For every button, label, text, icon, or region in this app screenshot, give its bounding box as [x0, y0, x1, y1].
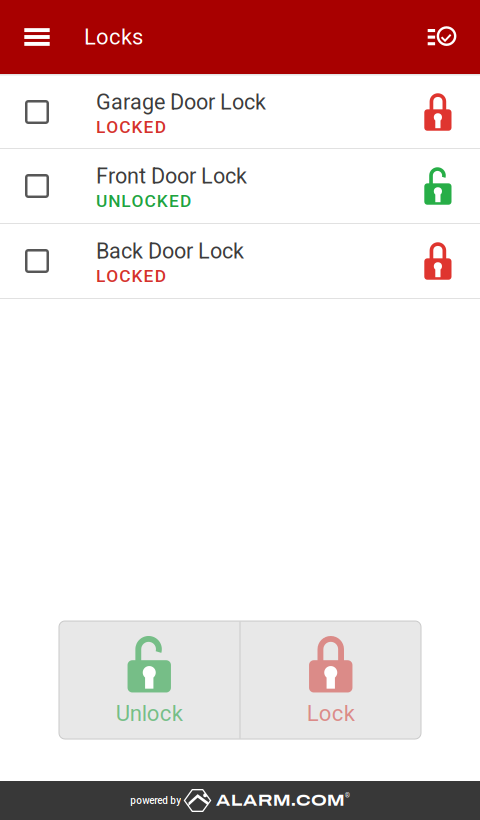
staticText: D: [180, 191, 191, 211]
staticText: D: [155, 117, 166, 137]
button[interactable]: Back Door Lock: [0, 224, 480, 299]
staticText: L: [96, 117, 105, 137]
staticText: Back Door Lock: [96, 238, 244, 264]
staticText: E: [169, 191, 179, 211]
staticText: ALARM.COM: [216, 792, 345, 809]
button[interactable]: Menu: [0, 0, 74, 74]
staticText: C: [119, 117, 130, 137]
staticText: K: [131, 117, 142, 137]
button[interactable]: Front Door Lock: [0, 149, 480, 224]
staticText: O: [106, 117, 118, 137]
staticText: powered by: [130, 795, 181, 806]
button[interactable]: Garage Door Lock: [0, 76, 480, 149]
staticText: N: [108, 191, 120, 211]
staticText: O: [131, 191, 143, 211]
staticText: C: [145, 191, 156, 211]
staticText: L: [121, 191, 130, 211]
staticText: C: [119, 266, 130, 286]
staticText: E: [144, 117, 154, 137]
staticText: Garage Door Lock: [96, 89, 266, 115]
staticText: E: [144, 266, 154, 286]
button[interactable]: Unlock: [59, 621, 239, 738]
staticText: L: [96, 266, 105, 286]
staticText: K: [157, 191, 168, 211]
staticText: D: [155, 266, 166, 286]
staticText: Unlock: [116, 700, 183, 726]
button[interactable]: Select locks: [406, 0, 480, 74]
staticText: ®: [345, 792, 350, 799]
staticText: U: [96, 191, 107, 211]
staticText: Front Door Lock: [96, 163, 247, 189]
staticText: K: [131, 266, 142, 286]
staticText: Locks: [84, 24, 143, 50]
staticText: O: [106, 266, 118, 286]
button[interactable]: Lock: [240, 621, 421, 738]
staticText: Lock: [307, 700, 355, 726]
